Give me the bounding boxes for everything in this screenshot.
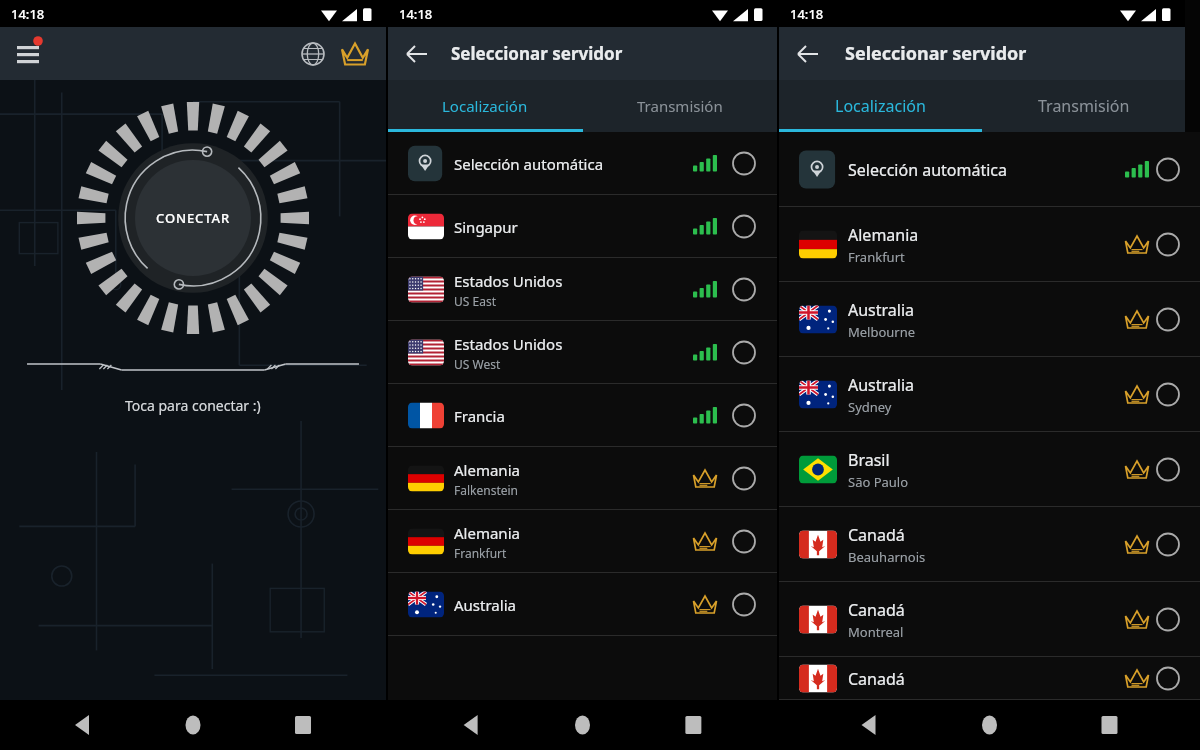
button[interactable]: Australia <box>388 573 777 636</box>
staticText: Estados Unidos <box>454 271 563 291</box>
staticText: Beauharnois <box>848 548 926 566</box>
staticText: Localización <box>442 96 528 116</box>
staticText: Alemania <box>454 523 520 543</box>
button[interactable]: Brasil <box>779 432 1200 507</box>
staticText: 14:18 <box>11 5 45 23</box>
button[interactable]: Singapur <box>388 195 777 258</box>
button[interactable]: Back <box>394 31 440 77</box>
button[interactable]: Alemania <box>388 510 777 573</box>
button[interactable]: Estados Unidos <box>388 321 777 384</box>
staticText: Montreal <box>848 623 904 641</box>
staticText: 14:18 <box>399 5 433 23</box>
button[interactable]: Premium <box>334 33 376 75</box>
staticText: Melbourne <box>848 323 916 341</box>
button[interactable]: Language <box>292 33 334 75</box>
staticText: Australia <box>848 374 915 396</box>
staticText: Frankfurt <box>848 248 905 266</box>
button[interactable]: Australia <box>779 282 1200 357</box>
button[interactable]: Menu <box>6 32 50 76</box>
button[interactable]: Canadá <box>779 582 1200 657</box>
staticText: Selección automática <box>454 154 604 174</box>
staticText: Transmisión <box>1038 95 1130 117</box>
button[interactable]: Canadá <box>779 507 1200 582</box>
staticText: Localización <box>835 95 926 117</box>
button[interactable]: Alemania <box>388 447 777 510</box>
staticText: Australia <box>848 299 915 321</box>
staticText: Canadá <box>848 668 905 690</box>
staticText: Selección automática <box>848 159 1007 181</box>
staticText: Falkenstein <box>454 482 519 498</box>
button[interactable]: Localización <box>779 80 982 132</box>
staticText: Singapur <box>454 217 518 237</box>
staticText: Transmisión <box>637 96 723 116</box>
staticText: São Paulo <box>848 473 909 491</box>
button[interactable]: Selección automática <box>388 132 777 195</box>
staticText: 14:18 <box>790 5 824 23</box>
button[interactable]: Localización <box>388 80 582 132</box>
staticText: Estados Unidos <box>454 334 563 354</box>
staticText: Alemania <box>454 460 520 480</box>
staticText: US East <box>454 293 496 309</box>
staticText: Canadá <box>848 599 905 621</box>
staticText: Toca para conectar :) <box>125 396 261 415</box>
button[interactable]: Alemania <box>779 207 1200 282</box>
staticText: Australia <box>454 595 516 615</box>
button[interactable]: Selección automática <box>779 132 1200 207</box>
staticText: Alemania <box>848 224 919 246</box>
button[interactable]: Francia <box>388 384 777 447</box>
staticText: US West <box>454 356 501 372</box>
button[interactable]: Back <box>785 31 831 77</box>
staticText: Brasil <box>848 449 890 471</box>
staticText: Francia <box>454 406 505 426</box>
staticText: Sydney <box>848 398 892 416</box>
button[interactable]: Estados Unidos <box>388 258 777 321</box>
staticText: CONECTAR <box>156 209 231 227</box>
staticText: Seleccionar servidor <box>451 42 623 65</box>
staticText: Seleccionar servidor <box>845 41 1027 66</box>
button[interactable]: Conectar <box>77 102 309 334</box>
staticText: Canadá <box>848 524 905 546</box>
button[interactable]: Transmisión <box>982 80 1185 132</box>
staticText: Frankfurt <box>454 545 507 561</box>
button[interactable]: Canadá <box>779 657 1200 700</box>
button[interactable]: Transmisión <box>582 80 777 132</box>
button[interactable]: Australia <box>779 357 1200 432</box>
